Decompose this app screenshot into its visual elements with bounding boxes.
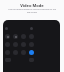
button[interactable]: Mute — [30, 27, 33, 30]
button[interactable]: Power — [5, 27, 8, 30]
button[interactable]: Settings — [29, 58, 34, 62]
button[interactable]: Play — [13, 42, 18, 47]
button[interactable]: Volume down — [5, 50, 10, 55]
button[interactable]: Volume up — [13, 50, 18, 55]
button[interactable]: Rewind — [5, 42, 10, 47]
staticText: Video Mode — [0, 3, 64, 8]
button[interactable]: Keypad — [5, 58, 11, 62]
button[interactable]: Close — [13, 34, 18, 39]
button[interactable]: Pause — [21, 42, 26, 47]
button[interactable]: Forward — [29, 42, 34, 47]
button[interactable]: Channel — [21, 50, 26, 55]
button[interactable]: Info — [29, 34, 34, 39]
button[interactable]: Home — [21, 34, 26, 39]
staticText: Use the remote below to control playback… — [8, 8, 56, 14]
button[interactable]: Record — [29, 50, 34, 55]
button[interactable]: Back — [5, 34, 10, 39]
